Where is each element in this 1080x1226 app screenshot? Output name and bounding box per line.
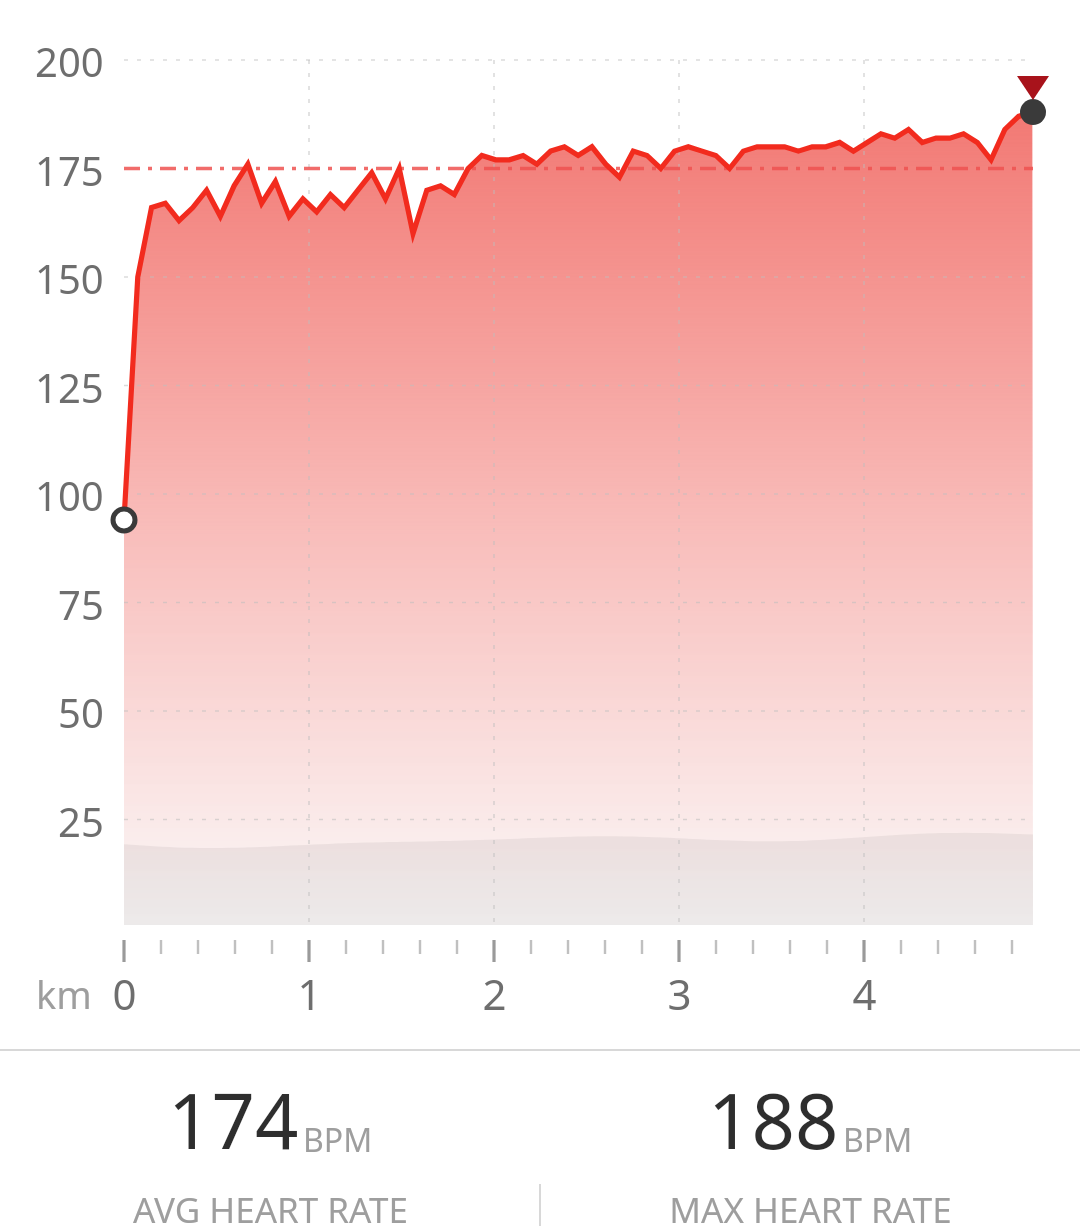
staticText: 200: [35, 34, 104, 88]
button[interactable]: 174: [0, 1050, 540, 1226]
staticText: MAX HEART RATE: [669, 1186, 952, 1226]
staticText: AVG HEART RATE: [133, 1186, 408, 1226]
staticText: 175: [35, 143, 104, 197]
staticText: 25: [58, 794, 104, 848]
staticText: 0: [112, 965, 137, 1022]
staticText: 3: [667, 965, 692, 1022]
staticText: 174: [168, 1068, 299, 1172]
staticText: 50: [58, 685, 104, 739]
staticText: 4: [852, 965, 877, 1022]
staticText: 1: [297, 965, 322, 1022]
staticText: 150: [35, 251, 104, 305]
staticText: BPM: [303, 1118, 373, 1162]
staticText: 2: [482, 965, 507, 1022]
staticText: 125: [35, 360, 104, 414]
button[interactable]: 188: [540, 1050, 1080, 1226]
staticText: 75: [58, 577, 104, 631]
staticText: 188: [708, 1068, 839, 1172]
staticText: km: [36, 968, 92, 1020]
staticText: 100: [35, 468, 104, 522]
staticText: BPM: [843, 1118, 913, 1162]
